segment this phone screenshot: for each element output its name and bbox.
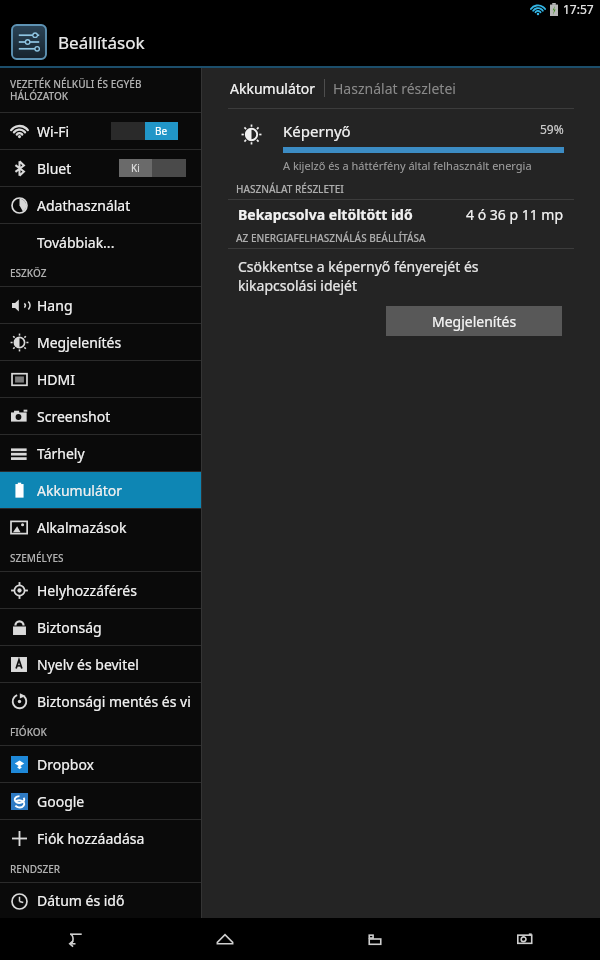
button[interactable]: Továbbiak... xyxy=(0,224,201,260)
staticText: HASZNÁLAT RÉSZLETEI xyxy=(236,182,344,196)
button[interactable]: Nyelv és bevitel xyxy=(0,646,201,682)
button[interactable]: Screenshot xyxy=(450,918,600,960)
staticText: A kijelző és a háttérfény által felhaszn… xyxy=(283,158,532,173)
staticText: Be xyxy=(155,124,168,138)
staticText: Megjelenítés xyxy=(432,312,517,331)
button[interactable]: Tárhely xyxy=(0,435,201,471)
staticText: Ki xyxy=(131,161,140,175)
button[interactable]: Megjelenítés xyxy=(386,306,562,336)
staticText: Wi-Fi xyxy=(37,122,70,141)
staticText: Nyelv és bevitel xyxy=(37,655,139,674)
staticText: FIÓKOK xyxy=(10,725,47,739)
staticText: Bekapcsolva eltöltött idő xyxy=(238,205,413,224)
button[interactable]: Dátum és idő xyxy=(0,883,201,918)
button[interactable]: Screenshot xyxy=(0,398,201,434)
staticText: Alkalmazások xyxy=(37,518,127,537)
staticText: RENDSZER xyxy=(10,862,61,876)
button[interactable]: Biztonsági mentés és vi xyxy=(0,683,201,719)
staticText: Csökkentse a képernyő fényerejét és kika… xyxy=(238,257,558,295)
button[interactable]: Back xyxy=(0,918,150,960)
button[interactable]: Akkumulátor xyxy=(0,472,201,508)
button[interactable]: Használat részletei xyxy=(333,79,456,98)
button[interactable]: Képernyő xyxy=(202,109,600,179)
button[interactable]: Megjelenítés xyxy=(0,324,201,360)
button[interactable]: Fiók hozzáadása xyxy=(0,820,201,856)
button[interactable]: Bluetooth xyxy=(0,150,201,186)
button[interactable]: Bekapcsolva eltöltött idő xyxy=(202,200,600,228)
staticText: 59% xyxy=(540,121,564,137)
staticText: Hang xyxy=(37,296,73,315)
staticText: Biztonság xyxy=(37,618,102,637)
button[interactable]: Home xyxy=(150,918,300,960)
staticText: Biztonsági mentés és vi xyxy=(37,692,191,711)
staticText: Beállítások xyxy=(58,31,145,54)
button[interactable]: Hang xyxy=(0,287,201,323)
staticText: Továbbiak... xyxy=(37,233,115,252)
staticText: Tárhely xyxy=(37,444,85,463)
staticText: Akkumulátor xyxy=(230,79,316,98)
staticText: Helyhozzáférés xyxy=(37,581,137,600)
staticText: ESZKÖZ xyxy=(10,266,47,280)
button[interactable]: Akkumulátor xyxy=(230,79,316,98)
staticText: Screenshot xyxy=(37,407,111,426)
button[interactable]: Wi-Fi xyxy=(0,113,201,149)
button[interactable]: Alkalmazások xyxy=(0,509,201,545)
staticText: Bluetooth xyxy=(37,159,78,178)
staticText: Google xyxy=(37,792,85,811)
staticText: 17:57 xyxy=(563,1,594,17)
staticText: Fiók hozzáadása xyxy=(37,829,145,848)
staticText: Akkumulátor xyxy=(37,481,123,500)
staticText: Adathasználat xyxy=(37,196,131,215)
button[interactable]: Recents xyxy=(300,918,450,960)
staticText: Dátum és idő xyxy=(37,891,125,910)
button[interactable]: Google xyxy=(0,783,201,819)
button[interactable]: Biztonság xyxy=(0,609,201,645)
button[interactable]: HDMI xyxy=(0,361,201,397)
staticText: AZ ENERGIAFELHASZNÁLÁS BEÁLLÍTÁSA xyxy=(236,231,426,245)
staticText: Képernyő xyxy=(283,121,351,141)
staticText: Használat részletei xyxy=(333,79,456,98)
button[interactable]: Helyhozzáférés xyxy=(0,572,201,608)
button[interactable]: Dropbox xyxy=(0,746,201,782)
staticText: HDMI xyxy=(37,370,76,389)
button[interactable]: Be xyxy=(111,122,178,140)
staticText: Dropbox xyxy=(37,755,95,774)
staticText: SZEMÉLYES xyxy=(10,551,64,565)
button[interactable]: Beállítások xyxy=(0,18,600,66)
staticText: Megjelenítés xyxy=(37,333,122,352)
button[interactable]: Ki xyxy=(119,159,186,177)
button[interactable]: Adathasználat xyxy=(0,187,201,223)
staticText: VEZETÉK NÉLKÜLI ÉS EGYÉB HÁLÓZATOK xyxy=(10,77,142,103)
staticText: 4 ó 36 p 11 mp xyxy=(466,205,564,224)
